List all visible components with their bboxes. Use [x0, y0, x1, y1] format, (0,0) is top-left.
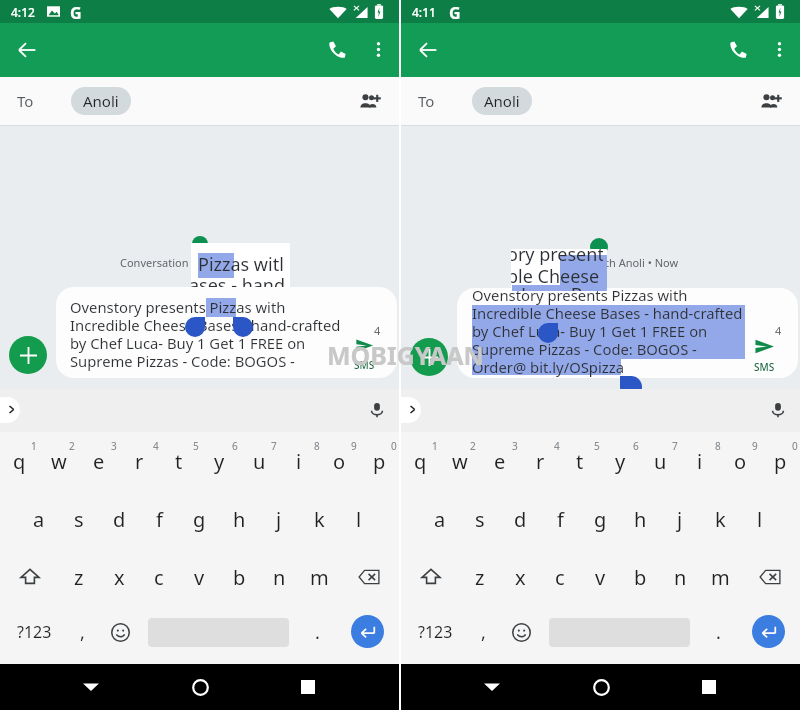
button[interactable]: u: [239, 432, 279, 490]
button[interactable]: b: [219, 548, 259, 606]
button[interactable]: Space: [140, 606, 297, 664]
button[interactable]: Attach: [410, 338, 448, 376]
button[interactable]: z: [460, 548, 500, 606]
button[interactable]: g: [179, 490, 219, 548]
button[interactable]: Anoli: [71, 87, 131, 115]
button[interactable]: Enter: [735, 606, 800, 664]
button[interactable]: Add people: [355, 86, 385, 116]
button[interactable]: Back: [7, 30, 47, 70]
button[interactable]: e: [480, 432, 520, 490]
button[interactable]: q: [401, 432, 440, 490]
button[interactable]: .: [300, 606, 334, 664]
button[interactable]: h: [219, 490, 259, 548]
button[interactable]: Back: [475, 670, 509, 704]
button[interactable]: Home: [584, 670, 618, 704]
button[interactable]: d: [500, 490, 540, 548]
staticText: w: [51, 448, 67, 475]
button[interactable]: ,: [68, 606, 96, 664]
button[interactable]: Call: [317, 29, 357, 69]
button[interactable]: w: [440, 432, 480, 490]
button[interactable]: Send SMS: [742, 336, 786, 378]
button[interactable]: Recents: [291, 670, 325, 704]
button[interactable]: x: [500, 548, 540, 606]
button[interactable]: l: [339, 490, 379, 548]
button[interactable]: p: [359, 432, 399, 490]
button[interactable]: z: [59, 548, 99, 606]
button[interactable]: Voice input: [364, 397, 390, 423]
button[interactable]: i: [680, 432, 720, 490]
staticText: p: [774, 448, 787, 475]
button[interactable]: Home: [183, 670, 217, 704]
button[interactable]: b: [620, 548, 660, 606]
button[interactable]: s: [59, 490, 99, 548]
button[interactable]: More options: [759, 29, 799, 69]
button[interactable]: ?123: [0, 606, 68, 664]
button[interactable]: .: [701, 606, 735, 664]
button[interactable]: v: [179, 548, 219, 606]
button[interactable]: More options: [358, 29, 398, 69]
button[interactable]: d: [99, 490, 139, 548]
button[interactable]: j: [259, 490, 299, 548]
button[interactable]: u: [640, 432, 680, 490]
button[interactable]: r: [520, 432, 560, 490]
button[interactable]: ,: [469, 606, 497, 664]
button[interactable]: Emoji: [501, 606, 541, 664]
button[interactable]: Expand suggestions: [0, 397, 20, 423]
button[interactable]: g: [580, 490, 620, 548]
button[interactable]: f: [540, 490, 580, 548]
button[interactable]: k: [700, 490, 740, 548]
button[interactable]: h: [620, 490, 660, 548]
button[interactable]: o: [720, 432, 760, 490]
button[interactable]: y: [199, 432, 239, 490]
staticText: 1: [31, 439, 37, 453]
button[interactable]: x: [99, 548, 139, 606]
button[interactable]: o: [319, 432, 359, 490]
button[interactable]: Add people: [756, 86, 786, 116]
button[interactable]: r: [119, 432, 159, 490]
button[interactable]: j: [660, 490, 700, 548]
button[interactable]: f: [139, 490, 179, 548]
button[interactable]: Backspace: [740, 548, 800, 606]
button[interactable]: a: [420, 490, 460, 548]
button[interactable]: n: [660, 548, 700, 606]
button[interactable]: Recents: [692, 670, 726, 704]
button[interactable]: e: [79, 432, 119, 490]
button[interactable]: y: [600, 432, 640, 490]
button[interactable]: q: [0, 432, 39, 490]
button[interactable]: c: [540, 548, 580, 606]
button[interactable]: Back: [408, 30, 448, 70]
button[interactable]: Space: [541, 606, 698, 664]
button[interactable]: l: [740, 490, 780, 548]
button[interactable]: Back: [74, 670, 108, 704]
staticText: m: [711, 564, 730, 591]
button[interactable]: t: [159, 432, 199, 490]
button[interactable]: Enter: [334, 606, 400, 664]
button[interactable]: c: [139, 548, 179, 606]
button[interactable]: s: [460, 490, 500, 548]
button[interactable]: w: [39, 432, 79, 490]
button[interactable]: Voice input: [765, 397, 791, 423]
button[interactable]: t: [560, 432, 600, 490]
button[interactable]: ?123: [401, 606, 469, 664]
staticText: ?123: [17, 621, 52, 643]
staticText: To: [418, 91, 435, 111]
button[interactable]: Anoli: [472, 87, 532, 115]
button[interactable]: a: [19, 490, 59, 548]
button[interactable]: n: [259, 548, 299, 606]
button[interactable]: m: [700, 548, 740, 606]
button[interactable]: Send SMS: [342, 336, 386, 378]
button[interactable]: Attach: [9, 336, 47, 374]
button[interactable]: m: [299, 548, 339, 606]
button[interactable]: Call: [718, 29, 758, 69]
button[interactable]: Shift: [401, 548, 460, 606]
staticText: k: [314, 506, 325, 533]
button[interactable]: Emoji: [100, 606, 140, 664]
button[interactable]: i: [279, 432, 319, 490]
button[interactable]: Shift: [0, 548, 59, 606]
button[interactable]: p: [760, 432, 800, 490]
button[interactable]: Expand suggestions: [401, 397, 421, 423]
button[interactable]: v: [580, 548, 620, 606]
button[interactable]: k: [299, 490, 339, 548]
button[interactable]: Backspace: [339, 548, 399, 606]
staticText: .: [716, 620, 721, 645]
